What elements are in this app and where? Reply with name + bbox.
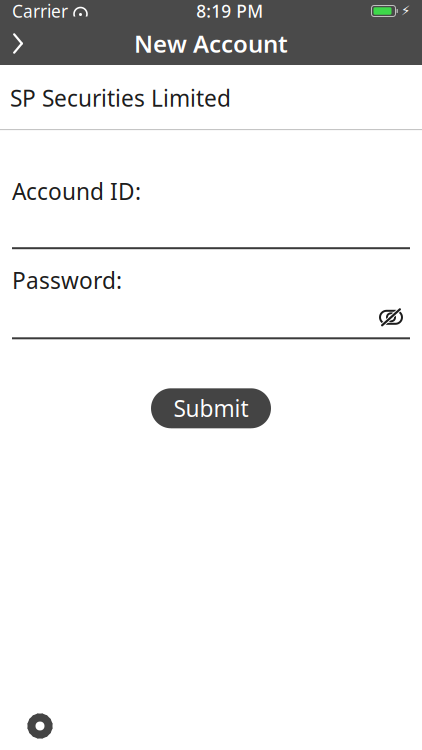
staticText: Submit — [173, 393, 248, 423]
button[interactable]: Show password — [372, 304, 410, 330]
staticText: Accound ID: — [12, 176, 141, 206]
staticText: New Account — [134, 28, 288, 59]
staticText: Password: — [12, 265, 122, 295]
staticText: ⚡︎ — [401, 3, 410, 18]
staticText: Carrier — [12, 0, 68, 22]
staticText: 8:19 PM — [196, 0, 263, 22]
button[interactable]: Settings — [19, 705, 61, 747]
button[interactable]: Submit — [151, 388, 271, 428]
button[interactable]: Back — [0, 22, 40, 65]
staticText: SP Securities Limited — [10, 83, 231, 113]
